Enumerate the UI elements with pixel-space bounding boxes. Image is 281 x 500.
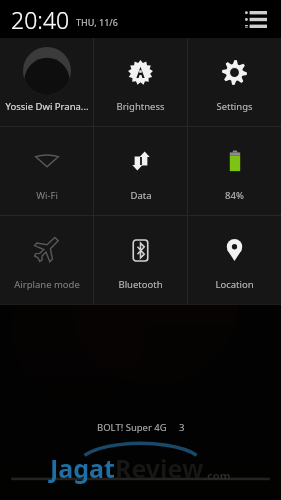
staticText: Bluetooth xyxy=(118,278,163,291)
staticText: 3 xyxy=(179,421,185,434)
button[interactable]: Location xyxy=(188,216,281,304)
button[interactable]: Notifications xyxy=(241,6,271,32)
button[interactable]: Wi-Fi xyxy=(0,127,93,215)
button[interactable]: Yossie Dwi Prana... xyxy=(0,38,93,126)
staticText: Yossie Dwi Prana... xyxy=(5,100,89,113)
staticText: Review xyxy=(115,451,204,485)
button[interactable]: Airplane mode xyxy=(0,216,93,304)
button[interactable]: 84% xyxy=(188,127,281,215)
button[interactable]: Brightness xyxy=(94,38,187,126)
button[interactable]: Data xyxy=(94,127,187,215)
button[interactable]: Bluetooth xyxy=(94,216,187,304)
button[interactable]: Settings xyxy=(188,38,281,126)
staticText: BOLT! Super 4G xyxy=(97,421,167,434)
staticText: Data xyxy=(130,189,152,202)
staticText: THU, 11/6 xyxy=(76,16,118,28)
staticText: .com xyxy=(204,468,231,483)
staticText: Jagat xyxy=(50,451,115,485)
staticText: Location xyxy=(215,278,254,291)
staticText: Brightness xyxy=(116,100,165,113)
staticText: Airplane mode xyxy=(14,278,80,291)
staticText: 20:40 xyxy=(11,4,70,35)
staticText: 84% xyxy=(225,189,244,202)
staticText: Settings xyxy=(216,100,253,113)
staticText: Wi-Fi xyxy=(36,189,58,202)
